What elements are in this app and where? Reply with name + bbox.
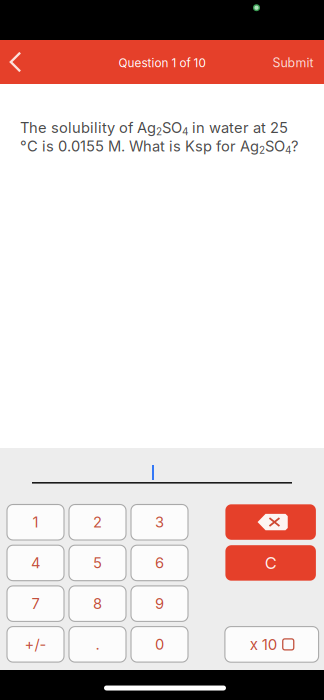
- staticText: x 10: [250, 635, 278, 653]
- staticText: Question 1 of 10: [118, 56, 205, 70]
- staticText: 5: [93, 554, 102, 572]
- staticText: 7: [31, 595, 39, 612]
- staticText: 6: [155, 554, 164, 572]
- button[interactable]: 5: [69, 545, 126, 581]
- button[interactable]: x 10: [225, 627, 319, 662]
- button[interactable]: +/-: [7, 627, 64, 662]
- staticText: 2: [93, 513, 102, 531]
- button[interactable]: 7: [7, 586, 64, 621]
- staticText: Submit: [272, 55, 313, 70]
- button[interactable]: 6: [131, 545, 188, 581]
- button[interactable]: Submit: [262, 41, 324, 85]
- button[interactable]: 2: [69, 504, 126, 540]
- staticText: C: [265, 553, 277, 573]
- staticText: 9: [155, 595, 164, 612]
- button[interactable]: 0: [131, 627, 188, 662]
- staticText: +/-: [24, 635, 46, 653]
- button[interactable]: C: [225, 545, 316, 581]
- button[interactable]: 9: [131, 586, 188, 621]
- button[interactable]: .: [69, 627, 126, 662]
- button[interactable]: 4: [7, 545, 64, 581]
- button[interactable]: Delete: [225, 504, 316, 540]
- staticText: 4: [31, 554, 40, 572]
- button[interactable]: 3: [131, 504, 188, 540]
- button[interactable]: Back: [0, 40, 31, 84]
- staticText: 8: [93, 595, 102, 612]
- staticText: 3: [155, 513, 164, 531]
- button[interactable]: 1: [7, 504, 64, 540]
- staticText: .: [95, 635, 99, 653]
- button[interactable]: 8: [69, 586, 126, 621]
- staticText: The solubility of Ag2SO4 in water at 25 …: [20, 119, 298, 156]
- staticText: 0: [155, 635, 164, 653]
- staticText: 1: [32, 513, 38, 531]
